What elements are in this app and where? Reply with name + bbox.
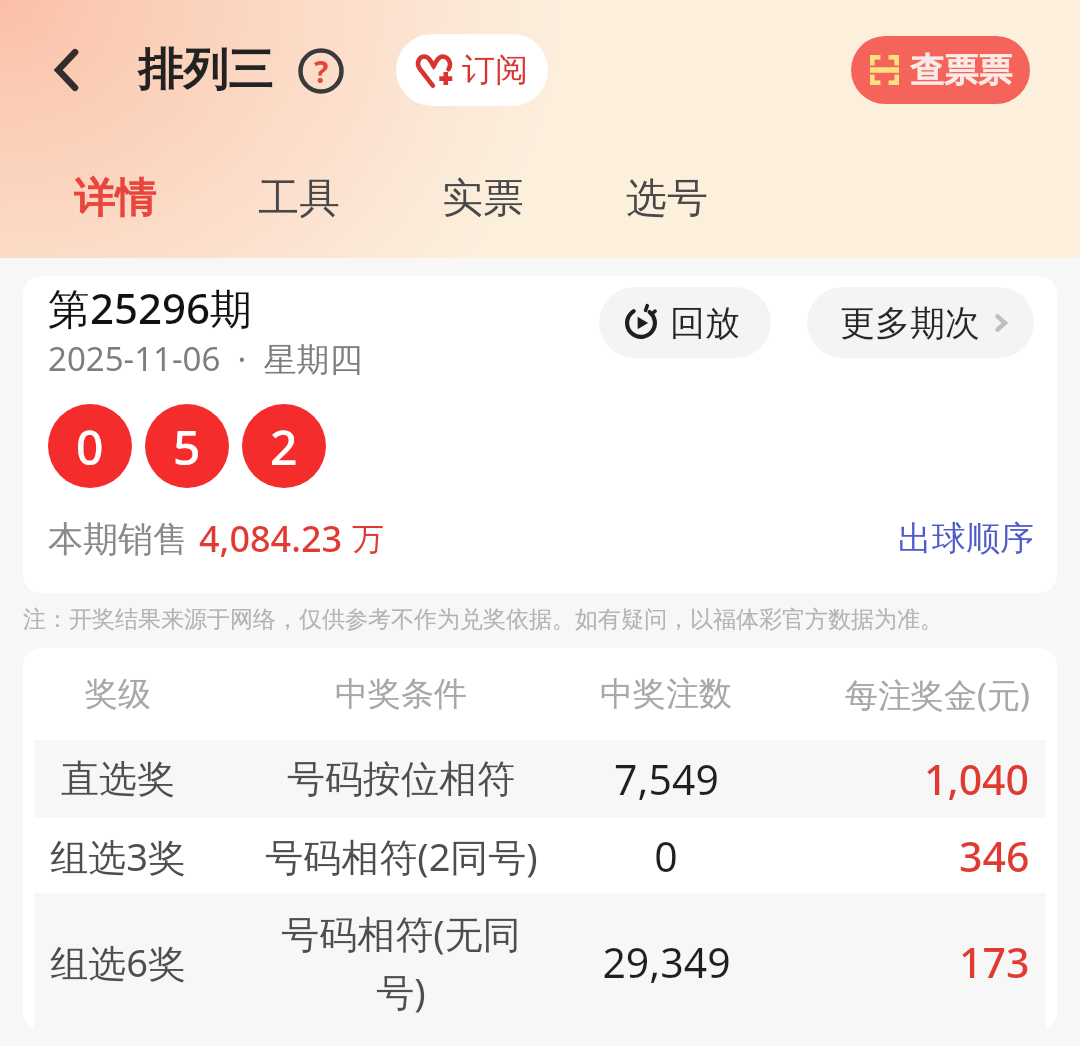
staticText: 回放 [670, 301, 740, 345]
staticText: 本期销售 [48, 517, 188, 561]
staticText: 中奖条件 [335, 673, 467, 715]
staticText: 1,040 [924, 751, 1030, 807]
staticText: 第25296期 [48, 279, 253, 336]
staticText: 组选6奖 [50, 936, 186, 988]
staticText: 中奖注数 [600, 673, 732, 715]
staticText: 选号 [626, 173, 708, 225]
staticText: 奖级 [85, 673, 151, 715]
button[interactable] [34, 818, 1046, 893]
button[interactable]: Help [297, 47, 345, 95]
staticText: 173 [959, 934, 1030, 990]
staticText: 排列三 [138, 42, 273, 99]
staticText: 7,549 [614, 751, 719, 807]
staticText: 号码按位相符 [287, 755, 515, 803]
staticText: 出球顺序 [898, 517, 1034, 560]
staticText: 万 [352, 519, 384, 559]
staticText: 详情 [74, 173, 156, 225]
staticText: 注：开奖结果来源于网络，仅供参考不作为兑奖依据。如有疑问，以福体彩官方数据为准。 [23, 605, 943, 634]
staticText: 订阅 [462, 49, 528, 91]
staticText: 查票票 [910, 49, 1012, 92]
button[interactable]: Back [30, 33, 104, 107]
staticText: 直选奖 [61, 755, 175, 803]
staticText: 号码相符(无同 号) [281, 907, 521, 1017]
staticText: 每注奖金(元) [845, 672, 1030, 717]
staticText: 实票 [442, 173, 524, 225]
button[interactable] [34, 740, 1046, 818]
staticText: 29,349 [602, 934, 731, 990]
staticText: 346 [959, 828, 1030, 884]
button[interactable]: 订阅 [396, 34, 548, 106]
button[interactable]: 出球顺序 [898, 511, 1034, 566]
button[interactable]: 查票票 [851, 36, 1030, 104]
button[interactable]: 详情 [53, 154, 177, 244]
staticText: 0 [654, 828, 678, 884]
staticText: 5 [173, 414, 201, 479]
staticText: 2 [270, 414, 298, 479]
staticText: 更多期次 [840, 301, 980, 345]
staticText: 号码相符(2同号) [265, 830, 538, 882]
button[interactable] [34, 893, 1046, 1031]
staticText: 工具 [258, 173, 340, 225]
staticText: 4,084.23 [199, 514, 343, 563]
button[interactable]: 实票 [421, 154, 545, 244]
button[interactable]: 回放 [599, 287, 771, 358]
staticText: ? [314, 51, 329, 92]
button[interactable]: 更多期次 [807, 287, 1034, 358]
button[interactable]: 工具 [237, 154, 361, 244]
staticText: 0 [76, 414, 104, 479]
button[interactable]: 选号 [605, 154, 729, 244]
staticText: 2025-11-06 · 星期四 [48, 336, 363, 381]
staticText: 组选3奖 [50, 830, 186, 882]
